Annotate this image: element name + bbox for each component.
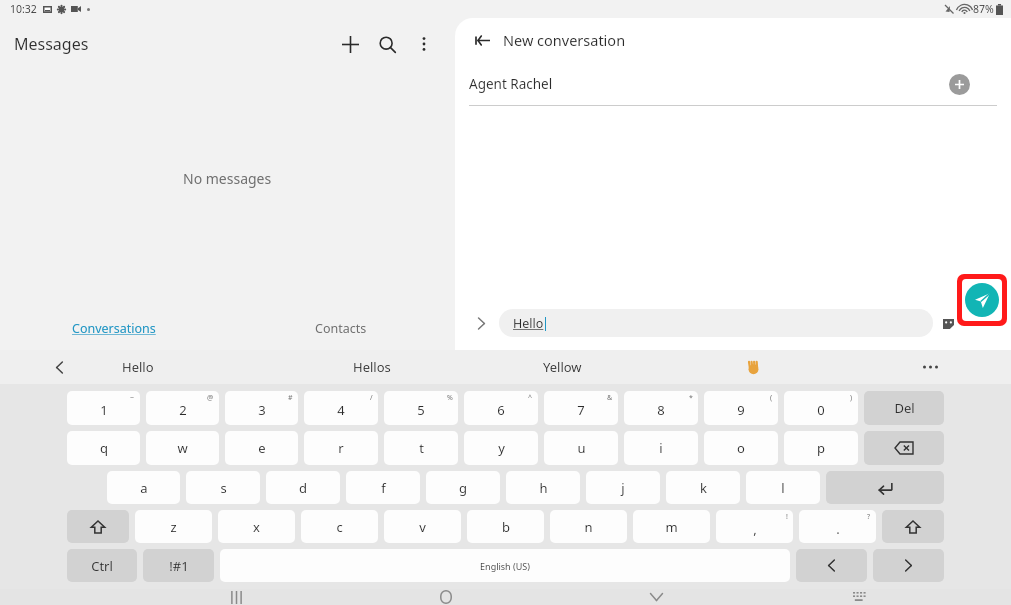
button[interactable]: q xyxy=(67,431,140,465)
button[interactable]: p xyxy=(784,431,858,465)
button[interactable]: More suggestions xyxy=(849,350,1011,384)
button[interactable]: 7 xyxy=(544,391,618,425)
button[interactable]: b xyxy=(467,510,544,543)
staticText: o xyxy=(737,439,745,457)
button[interactable]: u xyxy=(544,431,618,465)
button[interactable]: Wave emoji xyxy=(658,350,849,384)
button[interactable]: Hello xyxy=(499,309,933,337)
button[interactable]: f xyxy=(346,471,420,504)
button[interactable]: w xyxy=(146,431,219,465)
button[interactable]: c xyxy=(301,510,378,543)
button[interactable]: 2 xyxy=(146,391,219,425)
button[interactable]: 6 xyxy=(464,391,538,425)
button[interactable]: Previous suggestions xyxy=(46,354,72,380)
button[interactable]: Stickers xyxy=(937,312,959,334)
button[interactable]: Del xyxy=(864,391,944,425)
staticText: 4 xyxy=(337,401,345,419)
staticText: / xyxy=(370,393,373,403)
button[interactable]: z xyxy=(135,510,212,543)
button[interactable]: left xyxy=(796,549,867,582)
button[interactable]: g xyxy=(426,471,500,504)
button[interactable]: Hellos xyxy=(276,350,467,384)
button[interactable]: bksp xyxy=(864,431,944,465)
staticText: r xyxy=(338,439,344,457)
button[interactable]: shift xyxy=(882,510,944,543)
button[interactable]: Expand xyxy=(467,310,493,336)
staticText: ? xyxy=(867,512,871,522)
staticText: & xyxy=(607,393,613,403)
staticText: t xyxy=(419,439,424,457)
staticText: 2 xyxy=(179,401,187,419)
button[interactable]: Contacts xyxy=(227,306,455,350)
button[interactable]: d xyxy=(266,471,340,504)
staticText: i xyxy=(659,439,663,457)
button[interactable]: , xyxy=(716,510,793,543)
staticText: g xyxy=(459,479,467,497)
staticText: Agent Rachel xyxy=(469,75,553,93)
button[interactable]: 5 xyxy=(384,391,458,425)
button[interactable]: Ctrl xyxy=(67,549,137,582)
button[interactable]: New message xyxy=(333,27,367,61)
staticText: f xyxy=(381,479,386,497)
staticText: Hello xyxy=(513,315,544,332)
staticText: 5 xyxy=(417,401,425,419)
staticText: h xyxy=(539,479,548,497)
button[interactable]: Add recipient xyxy=(949,74,970,95)
button[interactable]: h xyxy=(506,471,580,504)
staticText: 3 xyxy=(258,401,266,419)
staticText: # xyxy=(288,393,293,403)
button[interactable]: m xyxy=(633,510,710,543)
button[interactable]: 0 xyxy=(784,391,858,425)
staticText: j xyxy=(621,479,625,497)
button[interactable]: n xyxy=(550,510,627,543)
staticText: Del xyxy=(894,399,915,417)
button[interactable]: j xyxy=(586,471,660,504)
button[interactable]: Back xyxy=(469,27,495,53)
button[interactable]: o xyxy=(704,431,778,465)
staticText: !#1 xyxy=(169,557,189,575)
button[interactable]: t xyxy=(384,431,458,465)
button[interactable]: right xyxy=(873,549,944,582)
button[interactable]: e xyxy=(225,431,298,465)
button[interactable]: enter xyxy=(826,471,944,504)
staticText: Ctrl xyxy=(91,557,113,575)
button[interactable]: Send xyxy=(965,283,999,317)
button[interactable]: i xyxy=(624,431,698,465)
button[interactable]: Conversations xyxy=(0,306,227,350)
button[interactable]: a xyxy=(107,471,180,504)
button[interactable]: 8 xyxy=(624,391,698,425)
button[interactable]: Hello xyxy=(0,350,276,384)
staticText: ~ xyxy=(130,393,135,403)
staticText: Contacts xyxy=(315,320,367,337)
button[interactable]: Change keyboard xyxy=(761,589,958,605)
button[interactable]: Home xyxy=(341,589,551,605)
button[interactable]: !#1 xyxy=(143,549,214,582)
button[interactable]: Yellow xyxy=(467,350,658,384)
button[interactable]: y xyxy=(464,431,538,465)
button[interactable]: 4 xyxy=(304,391,378,425)
staticText: 9 xyxy=(737,401,745,419)
button[interactable]: v xyxy=(384,510,461,543)
button[interactable]: More options xyxy=(407,27,441,61)
staticText: q xyxy=(100,439,108,457)
button[interactable]: k xyxy=(666,471,740,504)
button[interactable]: 3 xyxy=(225,391,298,425)
button[interactable]: l xyxy=(746,471,820,504)
button[interactable]: x xyxy=(218,510,295,543)
button[interactable]: r xyxy=(304,431,378,465)
button[interactable]: 9 xyxy=(704,391,778,425)
button[interactable]: . xyxy=(799,510,876,543)
button[interactable]: shift xyxy=(67,510,129,543)
staticText: 7 xyxy=(577,401,585,419)
staticText: 1 xyxy=(100,401,108,419)
staticText: 6 xyxy=(497,401,505,419)
staticText: v xyxy=(419,518,426,536)
button[interactable]: Hide keyboard xyxy=(551,589,761,605)
staticText: , xyxy=(753,520,757,538)
button[interactable]: English (US) xyxy=(220,549,790,582)
button[interactable]: 1 xyxy=(67,391,140,425)
staticText: y xyxy=(498,439,505,457)
button[interactable]: Search xyxy=(370,27,404,61)
button[interactable]: s xyxy=(186,471,260,504)
button[interactable]: Recents xyxy=(131,589,341,605)
